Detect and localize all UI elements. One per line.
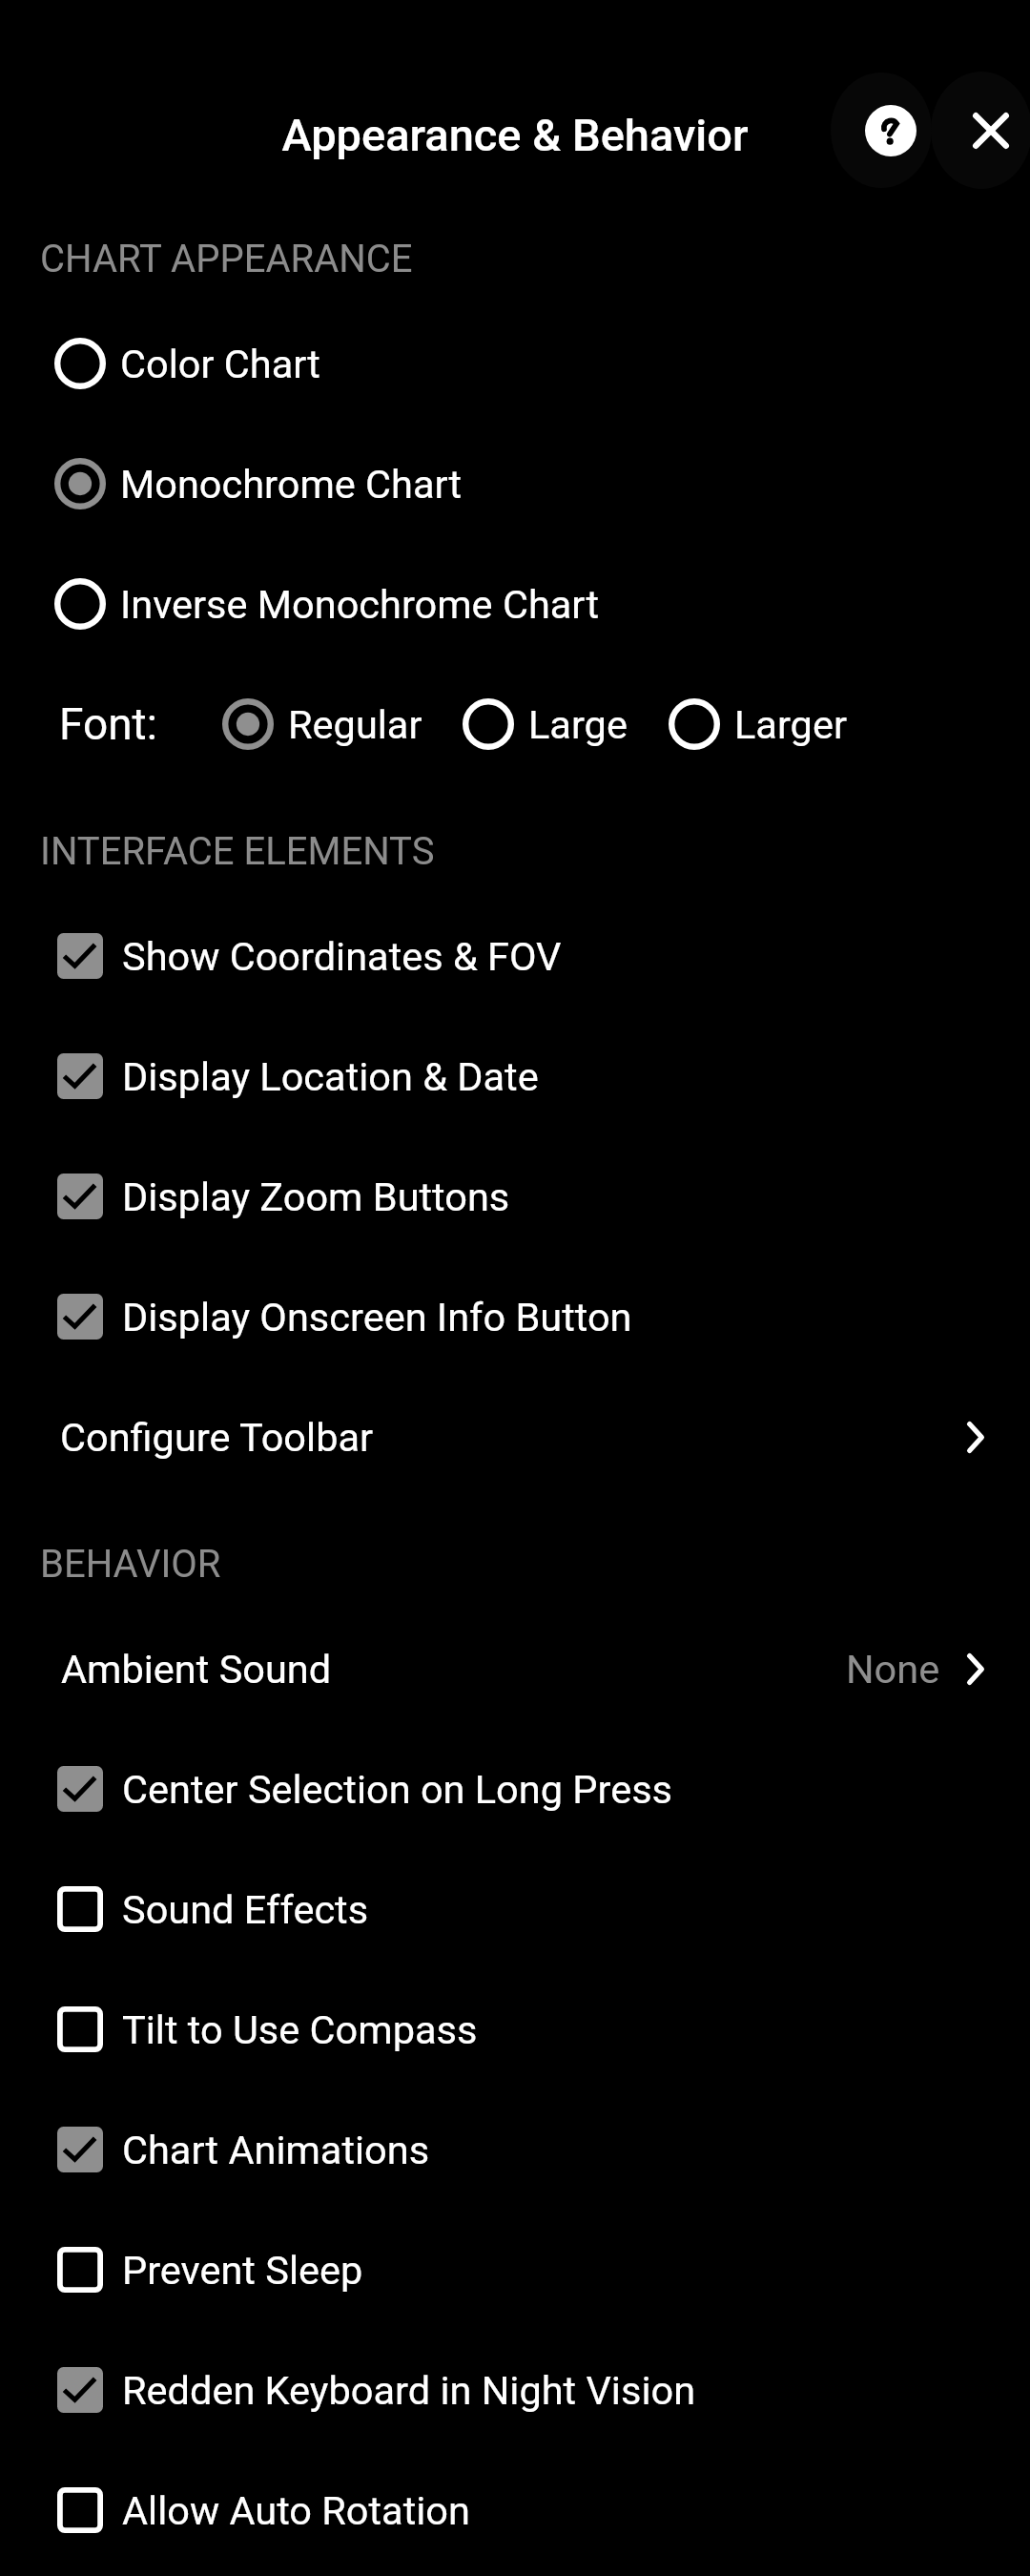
staticText: Large <box>528 701 628 748</box>
staticText: Appearance & Behavior <box>0 109 1030 161</box>
staticText: CHART APPEARANCE <box>40 237 413 281</box>
button[interactable]: Chart Animations <box>0 2089 1030 2210</box>
button[interactable]: Monochrome Chart <box>0 424 1030 544</box>
staticText: Show Coordinates & FOV <box>122 933 562 980</box>
button[interactable]: Tilt to Use Compass <box>0 1969 1030 2089</box>
button[interactable]: Ambient Sound <box>0 1609 1030 1729</box>
staticText: Display Location & Date <box>122 1053 539 1100</box>
staticText: Color Chart <box>120 341 320 387</box>
button[interactable]: Center Selection on Long Press <box>0 1729 1030 1849</box>
button[interactable]: Display Zoom Buttons <box>0 1136 1030 1257</box>
staticText: Inverse Monochrome Chart <box>120 581 600 628</box>
staticText: Sound Effects <box>122 1886 369 1933</box>
button[interactable]: Configure Toolbar <box>0 1377 1030 1497</box>
staticText: Configure Toolbar <box>60 1414 374 1461</box>
staticText: Allow Auto Rotation <box>122 2487 470 2534</box>
staticText: Larger <box>734 701 847 748</box>
button[interactable]: Regular <box>222 664 422 784</box>
staticText: Tilt to Use Compass <box>122 2006 478 2053</box>
staticText: Chart Animations <box>122 2127 430 2173</box>
staticText: Redden Keyboard in Night Vision <box>122 2367 696 2414</box>
staticText: Display Zoom Buttons <box>122 1174 510 1220</box>
button[interactable]: Help <box>831 73 932 188</box>
button[interactable]: Large <box>463 664 628 784</box>
staticText: Display Onscreen Info Button <box>122 1294 632 1340</box>
button[interactable]: Larger <box>669 664 847 784</box>
button[interactable]: Display Onscreen Info Button <box>0 1257 1030 1377</box>
button[interactable]: Color Chart <box>0 303 1030 424</box>
staticText: INTERFACE ELEMENTS <box>40 829 435 874</box>
staticText: None <box>846 1646 940 1693</box>
button[interactable]: Show Coordinates & FOV <box>0 896 1030 1016</box>
staticText: BEHAVIOR <box>40 1542 221 1587</box>
staticText: Ambient Sound <box>61 1646 332 1693</box>
button[interactable]: Close <box>931 72 1030 189</box>
button[interactable]: Inverse Monochrome Chart <box>0 544 1030 664</box>
button[interactable]: Allow Auto Rotation <box>0 2450 1030 2570</box>
button[interactable]: Redden Keyboard in Night Vision <box>0 2330 1030 2450</box>
button[interactable]: Sound Effects <box>0 1849 1030 1969</box>
button[interactable]: Prevent Sleep <box>0 2210 1030 2330</box>
button[interactable]: Display Location & Date <box>0 1016 1030 1136</box>
staticText: Prevent Sleep <box>122 2247 363 2294</box>
staticText: Center Selection on Long Press <box>122 1766 673 1813</box>
staticText: Font: <box>59 698 157 750</box>
staticText: Regular <box>288 701 422 748</box>
staticText: Monochrome Chart <box>120 461 463 508</box>
